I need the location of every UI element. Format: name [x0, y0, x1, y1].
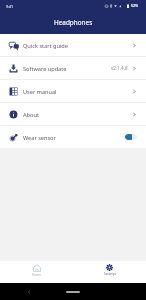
staticText: v2.1.4.8 — [111, 65, 128, 71]
staticText: Settings — [104, 272, 116, 276]
staticText: Wear sensor — [23, 134, 56, 142]
staticText: Software update — [23, 65, 67, 73]
button[interactable]: About — [0, 103, 146, 125]
button[interactable]: Software update — [0, 57, 146, 79]
button[interactable]: Wear sensor toggle — [125, 134, 137, 140]
staticText: 9:41 — [6, 4, 14, 9]
button[interactable]: Settings — [73, 261, 146, 283]
staticText: Quick start guide — [23, 42, 68, 50]
staticText: Headphones — [54, 18, 93, 27]
staticText: About — [23, 111, 39, 119]
other: Back — [27, 290, 31, 294]
staticText: User manual — [23, 88, 57, 96]
button[interactable]: Home — [0, 261, 73, 283]
button[interactable]: Wear sensor — [0, 126, 146, 148]
staticText: Home — [32, 273, 41, 277]
button[interactable]: User manual — [0, 80, 146, 102]
button[interactable]: Quick start guide — [0, 34, 146, 56]
staticText: 52% — [131, 3, 139, 8]
